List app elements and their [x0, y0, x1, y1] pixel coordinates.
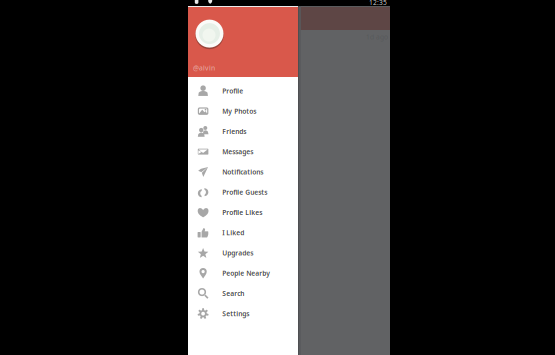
button[interactable]: My Photos — [188, 101, 298, 121]
button[interactable]: I Liked — [188, 222, 298, 243]
staticText: People Nearby — [222, 269, 270, 278]
button[interactable]: Profile — [188, 81, 298, 101]
staticText: Settings — [222, 309, 249, 318]
button[interactable]: Upgrades — [188, 243, 298, 263]
button[interactable]: Search — [188, 283, 298, 303]
staticText: I Liked — [222, 228, 244, 237]
button[interactable]: Profile Guests — [188, 182, 298, 202]
staticText: 12:35 — [369, 0, 387, 7]
staticText: My Photos — [222, 107, 256, 116]
button[interactable]: Profile Likes — [188, 202, 298, 222]
staticText: @alvin — [193, 63, 215, 72]
staticText: Messages — [222, 147, 253, 156]
button[interactable]: Messages — [188, 141, 298, 162]
staticText: Profile Likes — [222, 208, 262, 217]
button[interactable]: Settings — [188, 303, 298, 324]
staticText: Upgrades — [222, 248, 253, 257]
button[interactable]: Profile photo — [195, 19, 224, 49]
staticText: Profile — [222, 86, 243, 95]
button[interactable]: Friends — [188, 121, 298, 141]
staticText: Notifications — [222, 167, 263, 176]
staticText: Profile Guests — [222, 188, 267, 197]
button[interactable]: People Nearby — [188, 263, 298, 283]
button[interactable]: Notifications — [188, 162, 298, 182]
staticText: Friends — [222, 127, 246, 136]
staticText: Search — [222, 289, 244, 298]
